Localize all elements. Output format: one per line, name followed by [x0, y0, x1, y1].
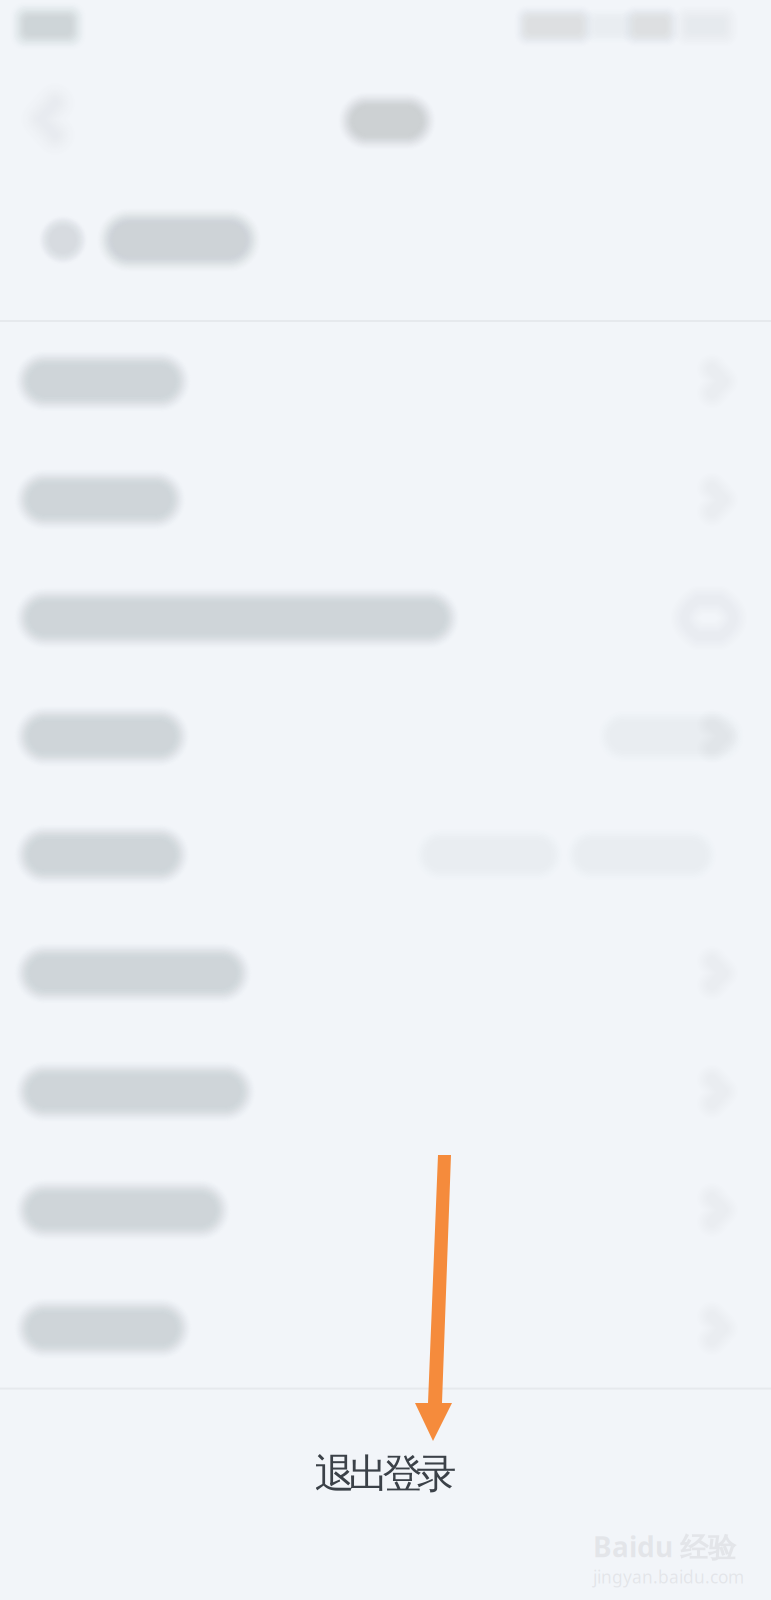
button[interactable]	[0, 914, 771, 1032]
button[interactable]	[0, 677, 771, 796]
button[interactable]	[0, 160, 771, 320]
staticText: jingyan.baidu.com	[593, 1565, 744, 1588]
button[interactable]	[0, 1151, 771, 1269]
button[interactable]	[0, 796, 771, 914]
button[interactable]	[0, 1269, 771, 1388]
button[interactable]	[0, 1032, 771, 1151]
button[interactable]	[0, 559, 771, 677]
button[interactable]	[0, 322, 771, 440]
button[interactable]	[0, 440, 771, 559]
staticText: 退出登录	[314, 1449, 456, 1498]
button[interactable]: 退出登录	[0, 1439, 771, 1509]
staticText: Baidu 经验	[593, 1528, 736, 1565]
button[interactable]: Back	[10, 81, 86, 157]
